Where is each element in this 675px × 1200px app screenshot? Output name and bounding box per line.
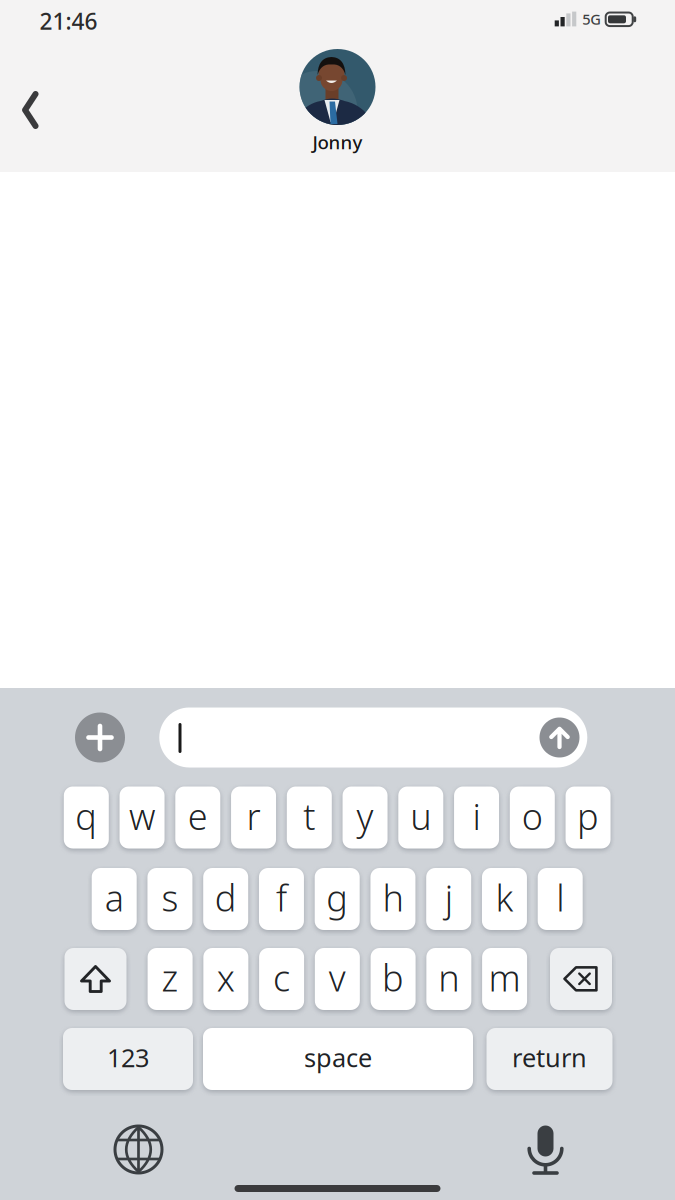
button[interactable]: r: [231, 786, 276, 848]
staticText: p: [577, 792, 599, 840]
button[interactable]: [550, 948, 612, 1010]
staticText: f: [276, 874, 287, 921]
button[interactable]: k: [482, 868, 527, 930]
staticText: return: [512, 1041, 587, 1074]
staticText: r: [247, 792, 261, 840]
button[interactable]: [115, 1126, 162, 1173]
button[interactable]: m: [482, 948, 527, 1010]
staticText: u: [410, 792, 431, 840]
staticText: g: [326, 874, 348, 921]
button[interactable]: j: [426, 868, 471, 930]
staticText: m: [489, 954, 521, 1001]
staticText: d: [215, 874, 237, 921]
button[interactable]: a: [92, 868, 137, 930]
staticText: a: [105, 874, 124, 921]
staticText: b: [382, 954, 404, 1001]
button[interactable]: [8, 88, 52, 132]
staticText: w: [129, 792, 155, 840]
staticText: x: [217, 954, 235, 1001]
button[interactable]: [526, 1123, 564, 1175]
staticText: e: [188, 792, 208, 840]
button[interactable]: [64, 948, 126, 1010]
staticText: z: [162, 954, 179, 1001]
button[interactable]: c: [259, 948, 304, 1010]
button[interactable]: z: [148, 948, 193, 1010]
staticText: q: [75, 792, 97, 840]
button[interactable]: h: [370, 868, 415, 930]
staticText: c: [273, 954, 290, 1001]
staticText: 123: [107, 1041, 149, 1074]
staticText: i: [473, 792, 481, 840]
staticText: y: [357, 792, 374, 840]
button[interactable]: b: [371, 948, 416, 1010]
button[interactable]: s: [147, 868, 192, 930]
button[interactable]: t: [287, 786, 332, 848]
button[interactable]: n: [426, 948, 471, 1010]
staticText: o: [522, 792, 543, 840]
staticText: 5G: [582, 9, 601, 29]
button[interactable]: p: [565, 786, 610, 848]
button[interactable]: [159, 707, 587, 767]
button[interactable]: l: [538, 868, 583, 930]
staticText: j: [445, 874, 453, 921]
staticText: space: [304, 1041, 372, 1074]
staticText: Jonny: [312, 130, 362, 154]
button[interactable]: f: [259, 868, 304, 930]
button[interactable]: u: [398, 786, 443, 848]
button[interactable]: d: [203, 868, 248, 930]
staticText: 21:46: [39, 6, 97, 36]
button[interactable]: Jonny: [277, 39, 397, 155]
button[interactable]: o: [510, 786, 555, 848]
button[interactable]: [75, 712, 125, 762]
button[interactable]: return: [486, 1028, 612, 1090]
button[interactable]: space: [203, 1028, 473, 1090]
button[interactable]: g: [315, 868, 360, 930]
button[interactable]: 123: [63, 1028, 193, 1090]
staticText: l: [556, 874, 564, 921]
button[interactable]: w: [120, 786, 165, 848]
staticText: k: [495, 874, 513, 921]
button[interactable]: v: [315, 948, 360, 1010]
button[interactable]: q: [64, 786, 109, 848]
button[interactable]: y: [343, 786, 388, 848]
button[interactable]: x: [203, 948, 248, 1010]
staticText: s: [161, 874, 178, 921]
staticText: t: [303, 792, 315, 840]
button[interactable]: e: [175, 786, 220, 848]
button[interactable]: i: [454, 786, 499, 848]
staticText: h: [382, 874, 403, 921]
button[interactable]: [539, 717, 579, 757]
staticText: n: [438, 954, 459, 1001]
staticText: v: [329, 954, 346, 1001]
